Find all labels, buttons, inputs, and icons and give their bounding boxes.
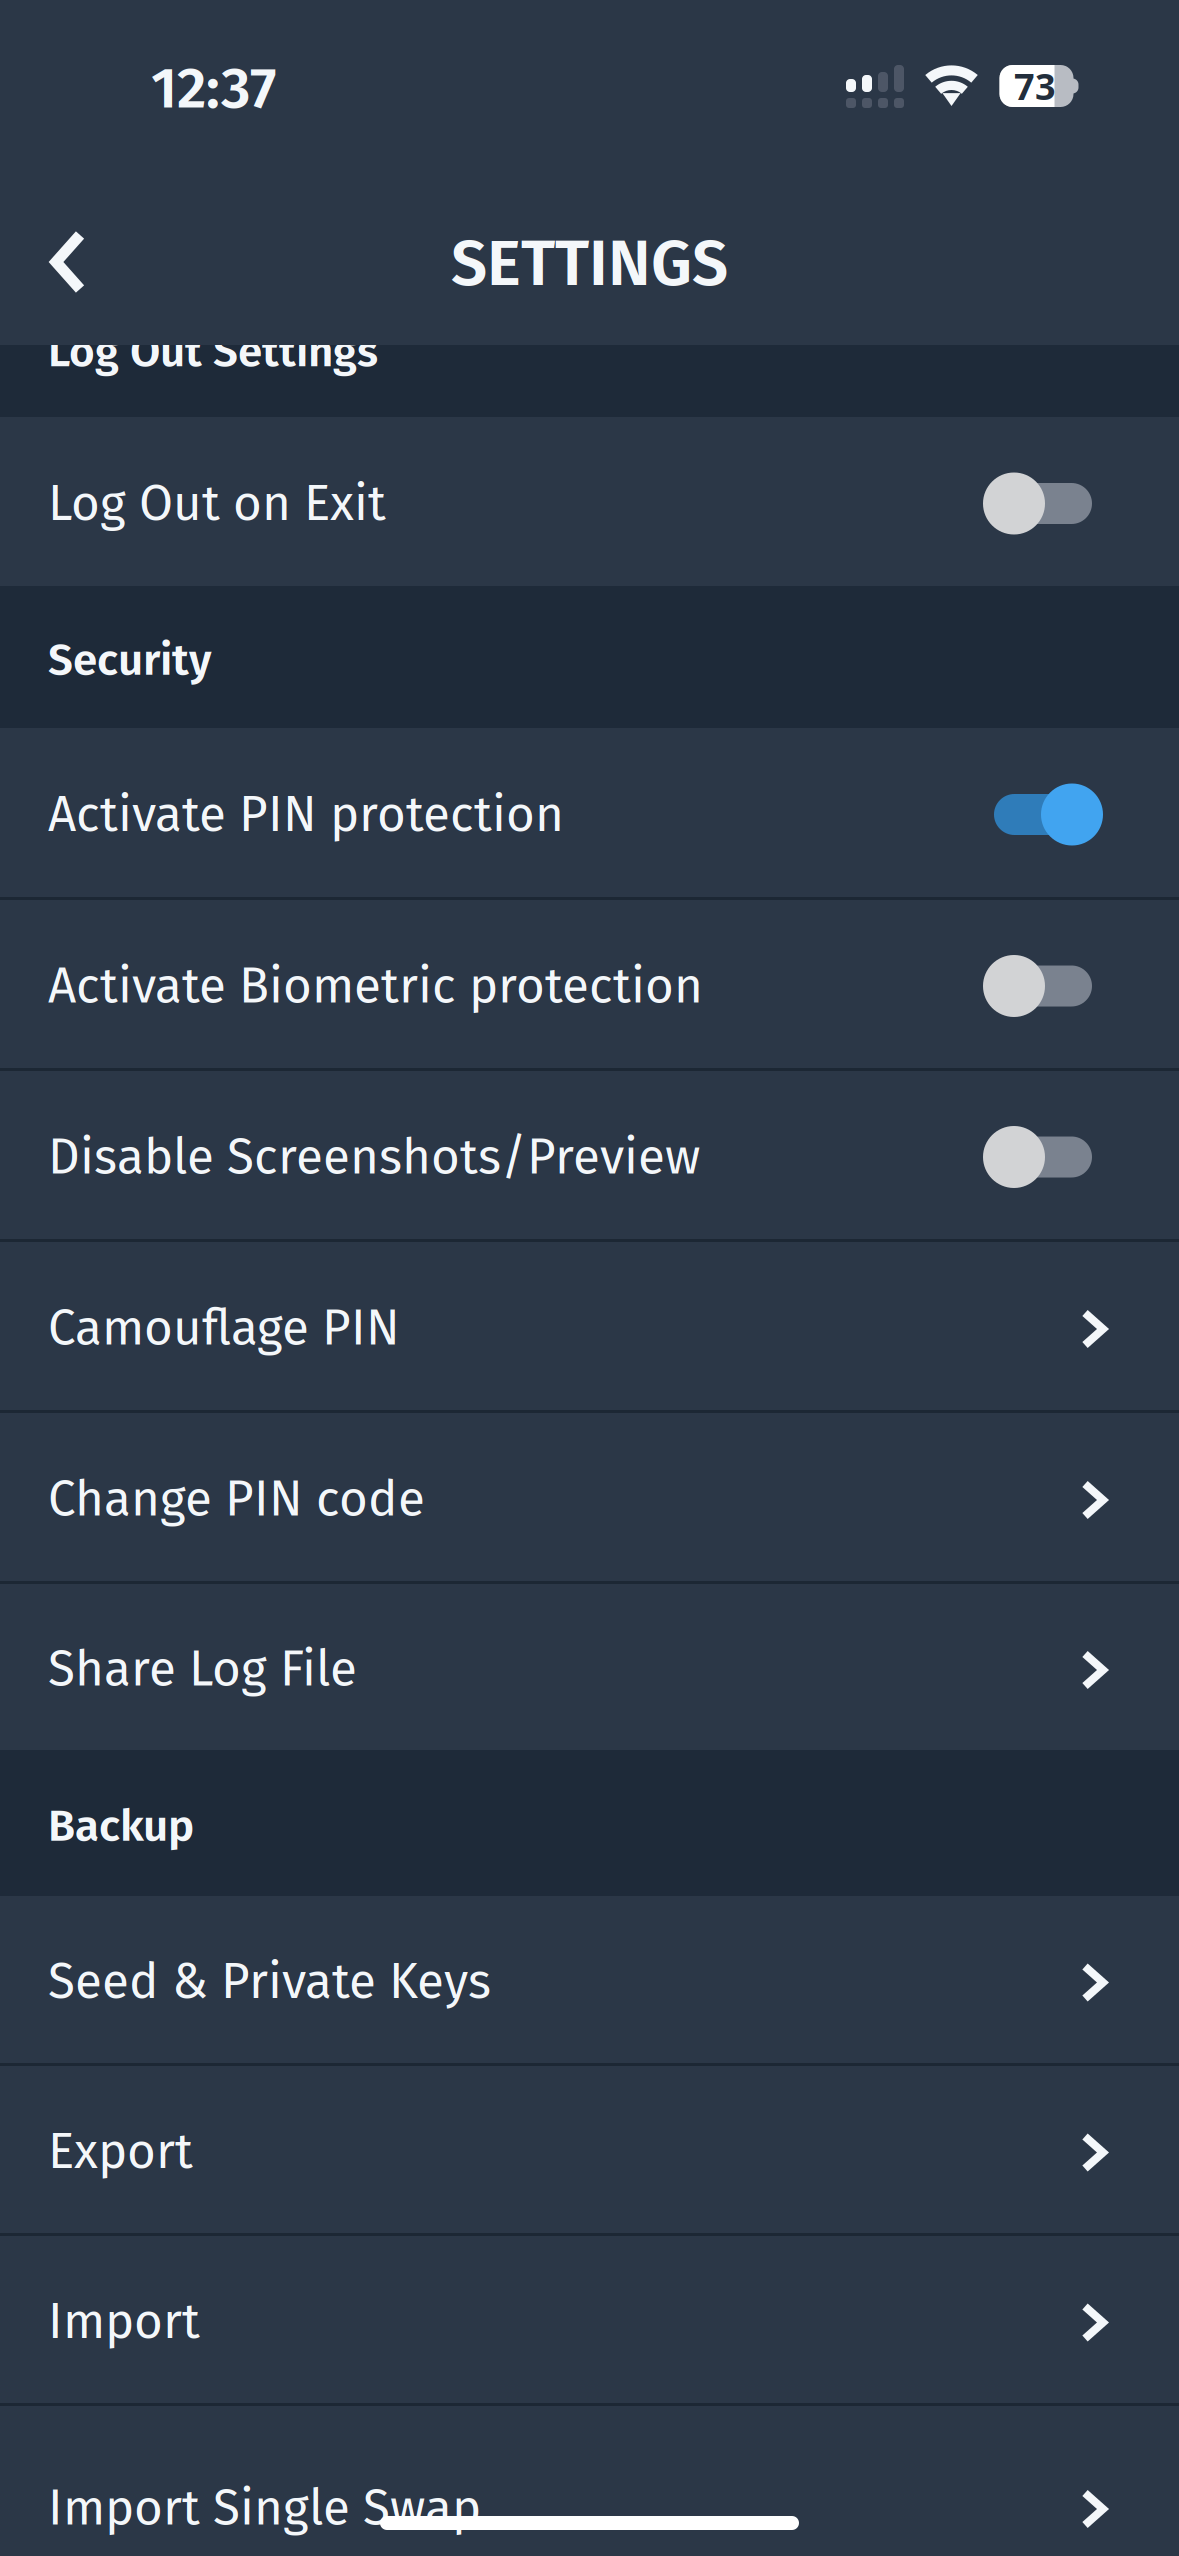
button[interactable]: Change PIN code	[0, 1413, 1179, 1581]
staticText: 12:37	[151, 54, 276, 123]
button[interactable]: Share Log File	[0, 1584, 1179, 1750]
button[interactable]: Camouflage PIN	[0, 1242, 1179, 1410]
staticText: Camouflage PIN	[48, 1298, 400, 1358]
staticText: Share Log File	[48, 1639, 357, 1699]
staticText: Activate PIN protection	[48, 785, 564, 844]
button[interactable]: Import	[0, 2236, 1179, 2403]
button[interactable]: Back	[12, 202, 124, 322]
staticText: Backup	[48, 1800, 194, 1852]
staticText: 73	[1014, 61, 1056, 110]
staticText: Disable Screenshots/Preview	[48, 1127, 700, 1187]
staticText: Log Out Settings	[48, 325, 378, 378]
staticText: Import Single Swap	[48, 2478, 481, 2538]
staticText: Log Out on Exit	[48, 474, 386, 533]
button[interactable]: Disable Screenshots/Preview	[0, 1071, 1179, 1239]
staticText: Seed & Private Keys	[48, 1952, 491, 2011]
button[interactable]: Import Single Swap	[0, 2406, 1179, 2556]
button[interactable]: Activate Biometric protection	[0, 900, 1179, 1068]
button[interactable]: Activate PIN protection	[0, 728, 1179, 897]
staticText: Export	[48, 2122, 193, 2181]
staticText: Activate Biometric protection	[48, 956, 703, 1016]
button[interactable]: Export	[0, 2066, 1179, 2233]
staticText: Import	[48, 2292, 200, 2351]
staticText: Change PIN code	[48, 1469, 425, 1529]
button[interactable]: Log Out on Exit	[0, 417, 1179, 586]
button[interactable]: Seed & Private Keys	[0, 1896, 1179, 2063]
staticText: Security	[48, 634, 212, 686]
staticText: SETTINGS	[451, 225, 728, 302]
